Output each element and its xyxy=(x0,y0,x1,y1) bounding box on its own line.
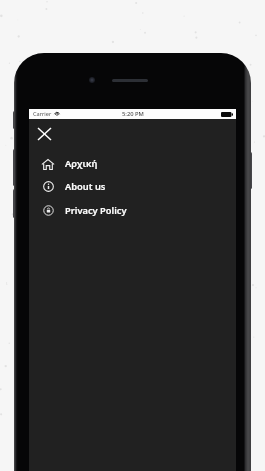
button[interactable]: Αρχική xyxy=(29,153,236,174)
staticText: About us xyxy=(65,180,106,193)
staticText: Privacy Policy xyxy=(65,204,127,217)
button[interactable]: About us xyxy=(29,174,236,198)
button[interactable]: Close xyxy=(33,123,55,145)
staticText: 5:20 PM xyxy=(122,110,144,118)
button[interactable]: Privacy Policy xyxy=(29,198,236,222)
staticText: Carrier xyxy=(33,110,52,118)
staticText: Αρχική xyxy=(65,157,98,170)
